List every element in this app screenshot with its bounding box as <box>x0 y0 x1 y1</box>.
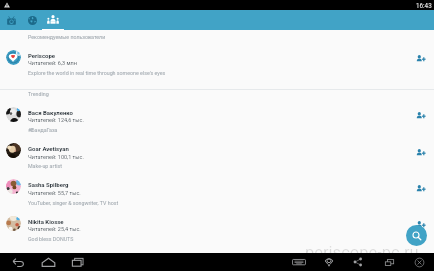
button[interactable]: Share <box>349 253 367 271</box>
staticText: 16:43 <box>416 2 432 9</box>
button[interactable]: Follow Goar Avetisyan <box>412 144 430 162</box>
button[interactable]: Screenshot <box>380 253 398 271</box>
staticText: Make-up artist <box>28 163 62 169</box>
staticText: #БандаГаза <box>28 127 58 133</box>
staticText: Nikita Kiosse <box>28 218 64 225</box>
staticText: Читателей: 124,6 тыс. <box>28 117 84 123</box>
staticText: Читателей: 25,4 тыс. <box>28 226 81 232</box>
button[interactable]: Sasha Spilberg <box>0 179 434 215</box>
button[interactable]: Follow Periscope <box>412 50 430 68</box>
button[interactable]: Follow Вася Вакуленко <box>412 107 430 125</box>
button[interactable]: Nikita Kiosse <box>0 216 434 252</box>
button[interactable]: Follow Nikita Kiosse <box>412 216 430 234</box>
staticText: Explore the world in real time through s… <box>28 70 166 76</box>
button[interactable]: Follow Sasha Spilberg <box>412 180 430 198</box>
button[interactable]: Globe <box>21 10 43 30</box>
button[interactable]: Back <box>9 253 27 271</box>
staticText: periscope-pc.ru <box>305 243 419 262</box>
staticText: Periscope <box>28 52 56 59</box>
button[interactable]: Close <box>410 253 428 271</box>
staticText: Читателей: 6,3 млн <box>28 60 77 66</box>
button[interactable]: People <box>42 10 64 30</box>
staticText: Sasha Spilberg <box>28 181 69 188</box>
staticText: YouTuber, singer & songwriter, TV host <box>28 200 119 206</box>
button[interactable]: Broadcast <box>0 10 22 30</box>
button[interactable]: Location <box>320 253 338 271</box>
staticText: Читателей: 55,7 тыс. <box>28 190 81 196</box>
button[interactable]: Recents <box>69 253 87 271</box>
button[interactable]: Вася Вакуленко <box>0 107 434 143</box>
button[interactable]: Periscope <box>0 50 434 86</box>
button[interactable]: Search <box>406 225 427 246</box>
staticText: God bless DONUTS <box>28 236 74 242</box>
button[interactable]: Home <box>39 253 57 271</box>
staticText: Вася Вакуленко <box>28 109 73 116</box>
button[interactable]: Keyboard <box>290 253 308 271</box>
button[interactable]: Goar Avetisyan <box>0 143 434 179</box>
staticText: Рекомендуемые пользователи <box>28 34 106 40</box>
staticText: Trending <box>28 91 49 97</box>
staticText: Читателей: 100,1 тыс. <box>28 154 84 160</box>
staticText: Goar Avetisyan <box>28 145 69 152</box>
